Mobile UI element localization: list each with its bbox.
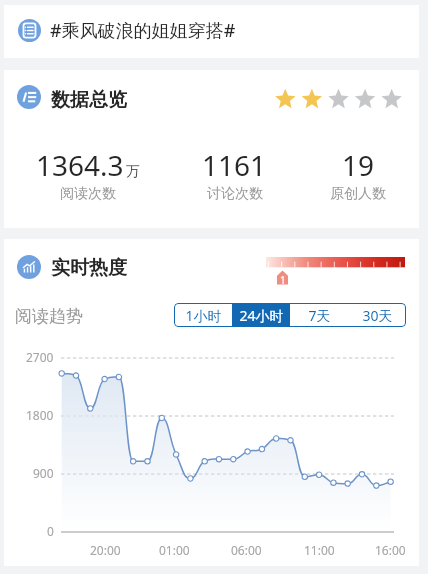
staticText: 1 bbox=[280, 273, 286, 287]
staticText: 阅读次数 bbox=[60, 185, 116, 203]
staticText: 阅读趋势 bbox=[15, 306, 83, 327]
staticText: 1小时 bbox=[185, 306, 222, 325]
staticText: 30天 bbox=[362, 306, 393, 325]
staticText: 讨论次数 bbox=[207, 185, 263, 203]
button[interactable]: 1小时 bbox=[174, 303, 232, 327]
staticText: 01:00 bbox=[159, 542, 190, 558]
staticText: 7天 bbox=[308, 306, 331, 325]
staticText: 11:00 bbox=[304, 542, 335, 558]
staticText: 20:00 bbox=[90, 542, 121, 558]
staticText: 06:00 bbox=[231, 542, 262, 558]
button[interactable]: 30天 bbox=[348, 303, 406, 327]
staticText: 1364.3 bbox=[36, 146, 124, 184]
staticText: 数据总览 bbox=[51, 88, 127, 112]
staticText: 原创人数 bbox=[330, 185, 386, 203]
button[interactable]: 24小时 bbox=[232, 303, 290, 327]
staticText: 16:00 bbox=[375, 542, 406, 558]
staticText: 19 bbox=[342, 146, 375, 184]
staticText: 1800 bbox=[26, 407, 54, 423]
button[interactable]: 7天 bbox=[290, 303, 348, 327]
button[interactable]: #乘风破浪的姐姐穿搭# bbox=[4, 5, 419, 58]
staticText: 万 bbox=[126, 163, 140, 181]
staticText: 1161 bbox=[202, 146, 267, 184]
staticText: 0 bbox=[47, 523, 54, 539]
staticText: 实时热度 bbox=[51, 256, 127, 280]
staticText: 24小时 bbox=[239, 306, 284, 325]
staticText: 2700 bbox=[26, 349, 54, 365]
staticText: 900 bbox=[33, 465, 54, 481]
staticText: #乘风破浪的姐姐穿搭# bbox=[50, 18, 236, 43]
